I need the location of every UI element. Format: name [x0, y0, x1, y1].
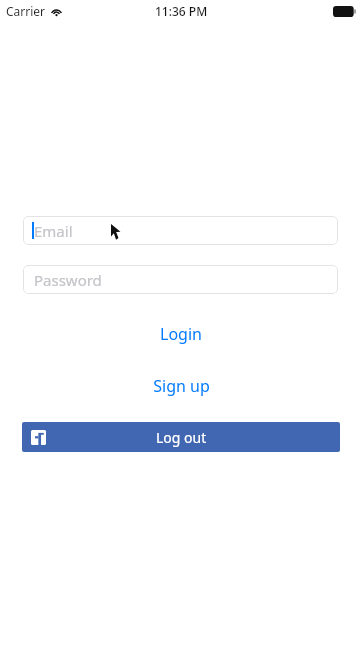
button[interactable]: Email — [23, 216, 338, 245]
staticText: Password — [34, 270, 102, 290]
staticText: 11:36 PM — [155, 3, 208, 19]
staticText: Sign up — [153, 375, 210, 397]
staticText: Log out — [156, 428, 207, 447]
button[interactable]: Sign up — [0, 373, 362, 398]
button[interactable]: Password — [23, 265, 338, 294]
button[interactable]: Login — [0, 321, 362, 346]
other: Facebook — [31, 430, 46, 445]
button[interactable]: Log out — [22, 422, 340, 452]
staticText: Carrier — [6, 3, 46, 19]
staticText: Login — [160, 323, 202, 345]
staticText: Email — [34, 221, 73, 241]
